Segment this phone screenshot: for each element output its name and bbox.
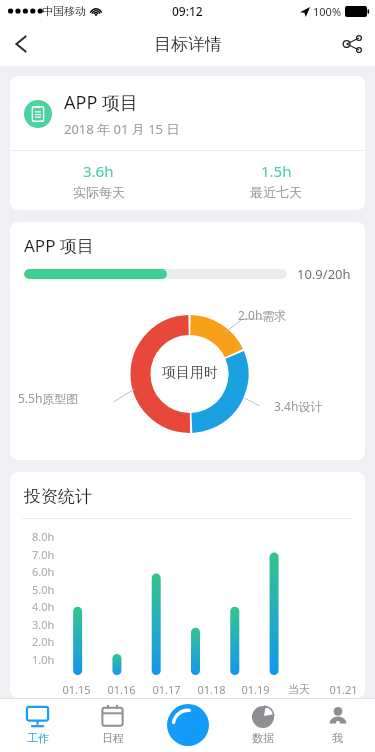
staticText: 3.6h <box>83 161 114 181</box>
staticText: 01.18 <box>197 682 226 697</box>
button[interactable]: APP 项目 <box>10 76 365 210</box>
staticText: 09:12 <box>172 3 203 19</box>
staticText: 2018 年 01 月 15 日 <box>64 120 180 138</box>
staticText: APP 项目 <box>24 234 94 257</box>
staticText: 工作 <box>27 731 49 745</box>
button[interactable]: APP 项目 <box>10 222 365 460</box>
button[interactable]: 我 <box>300 698 375 752</box>
staticText: 1.5h <box>261 161 292 181</box>
staticText: 01.19 <box>241 682 270 697</box>
staticText: 01.17 <box>152 682 181 697</box>
staticText: 项目用时 <box>162 364 218 382</box>
staticText: 5.0h <box>32 582 55 597</box>
staticText: 3.4h设计 <box>274 398 323 414</box>
staticText: 1.0h <box>32 652 55 667</box>
staticText: 01.16 <box>107 682 136 697</box>
staticText: 数据 <box>252 731 274 745</box>
staticText: 8.0h <box>32 529 55 544</box>
staticText: 01.21 <box>329 682 358 697</box>
staticText: 7.0h <box>32 547 55 562</box>
staticText: 6.0h <box>32 564 55 579</box>
staticText: 投资统计 <box>24 486 92 507</box>
staticText: 我 <box>332 731 343 745</box>
staticText: 01.15 <box>62 682 91 697</box>
staticText: APP 项目 <box>64 90 138 115</box>
button[interactable]: 数据 <box>225 698 300 752</box>
staticText: 日程 <box>102 731 124 745</box>
staticText: 100% <box>313 4 342 19</box>
staticText: 4.0h <box>32 599 55 614</box>
staticText: 2.0h需求 <box>238 307 287 323</box>
button[interactable]: Share <box>331 22 375 66</box>
staticText: 实际每天 <box>73 184 125 200</box>
staticText: 中国移动 <box>42 4 86 18</box>
button[interactable]: Back <box>0 22 44 66</box>
staticText: 10.9/20h <box>297 265 351 283</box>
staticText: 当天 <box>288 682 310 696</box>
button[interactable]: 工作 <box>0 698 75 752</box>
staticText: 2.0h <box>32 634 55 649</box>
button[interactable]: Add <box>150 698 225 752</box>
staticText: 最近七天 <box>250 184 302 200</box>
button[interactable]: 日程 <box>75 698 150 752</box>
staticText: 5.5h原型图 <box>18 390 79 406</box>
button[interactable]: 投资统计 <box>10 472 365 698</box>
staticText: 目标详情 <box>154 34 222 55</box>
staticText: 3.0h <box>32 617 55 632</box>
